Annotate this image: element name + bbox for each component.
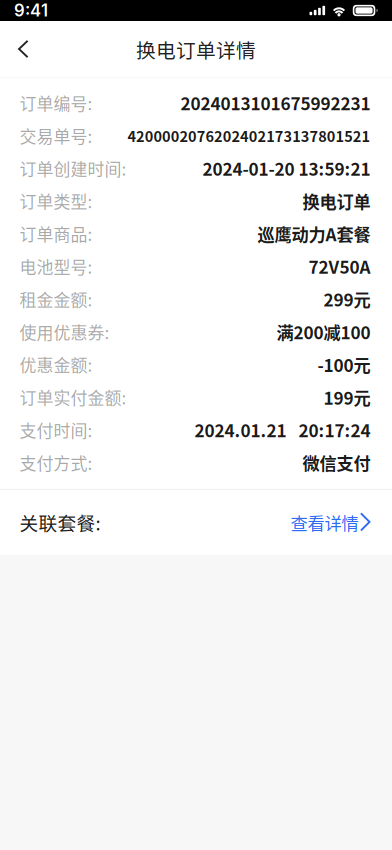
staticText: 换电订单 [302, 188, 370, 213]
staticText: 4200002076202402173137801521 [127, 125, 370, 146]
staticText: 2024.01.21 20:17:24 [194, 417, 370, 442]
button[interactable]: 关联套餐: [0, 490, 392, 555]
staticText: 支付时间: [19, 418, 92, 442]
staticText: 关联套餐: [19, 509, 100, 536]
staticText: 满200减100 [276, 319, 370, 344]
staticText: 租金金额: [19, 287, 92, 311]
staticText: 订单商品: [19, 221, 92, 246]
staticText: 巡鹰动力A套餐 [257, 221, 370, 246]
staticText: 订单实付金额: [19, 385, 126, 409]
staticText: 2024-01-20 13:59:21 [202, 156, 370, 181]
staticText: 72V50A [308, 254, 370, 279]
staticText: 支付方式: [19, 450, 92, 475]
button[interactable]: 返回 [0, 26, 45, 72]
staticText: 199元 [323, 385, 370, 410]
staticText: 电池型号: [19, 254, 92, 279]
staticText: 299元 [323, 287, 370, 311]
staticText: 查看详情 [290, 510, 358, 535]
staticText: 订单创建时间: [19, 156, 126, 180]
staticText: 订单类型: [19, 189, 92, 213]
staticText: 使用优惠券: [19, 319, 109, 344]
staticText: 微信支付 [302, 450, 370, 475]
staticText: 换电订单详情 [136, 35, 256, 64]
staticText: 交易单号: [19, 123, 92, 148]
staticText: 9:41 [14, 0, 48, 21]
staticText: 订单编号: [19, 91, 92, 115]
staticText: -100元 [317, 352, 370, 377]
staticText: 2024013101675992231 [180, 90, 370, 115]
staticText: 优惠金额: [19, 352, 92, 377]
